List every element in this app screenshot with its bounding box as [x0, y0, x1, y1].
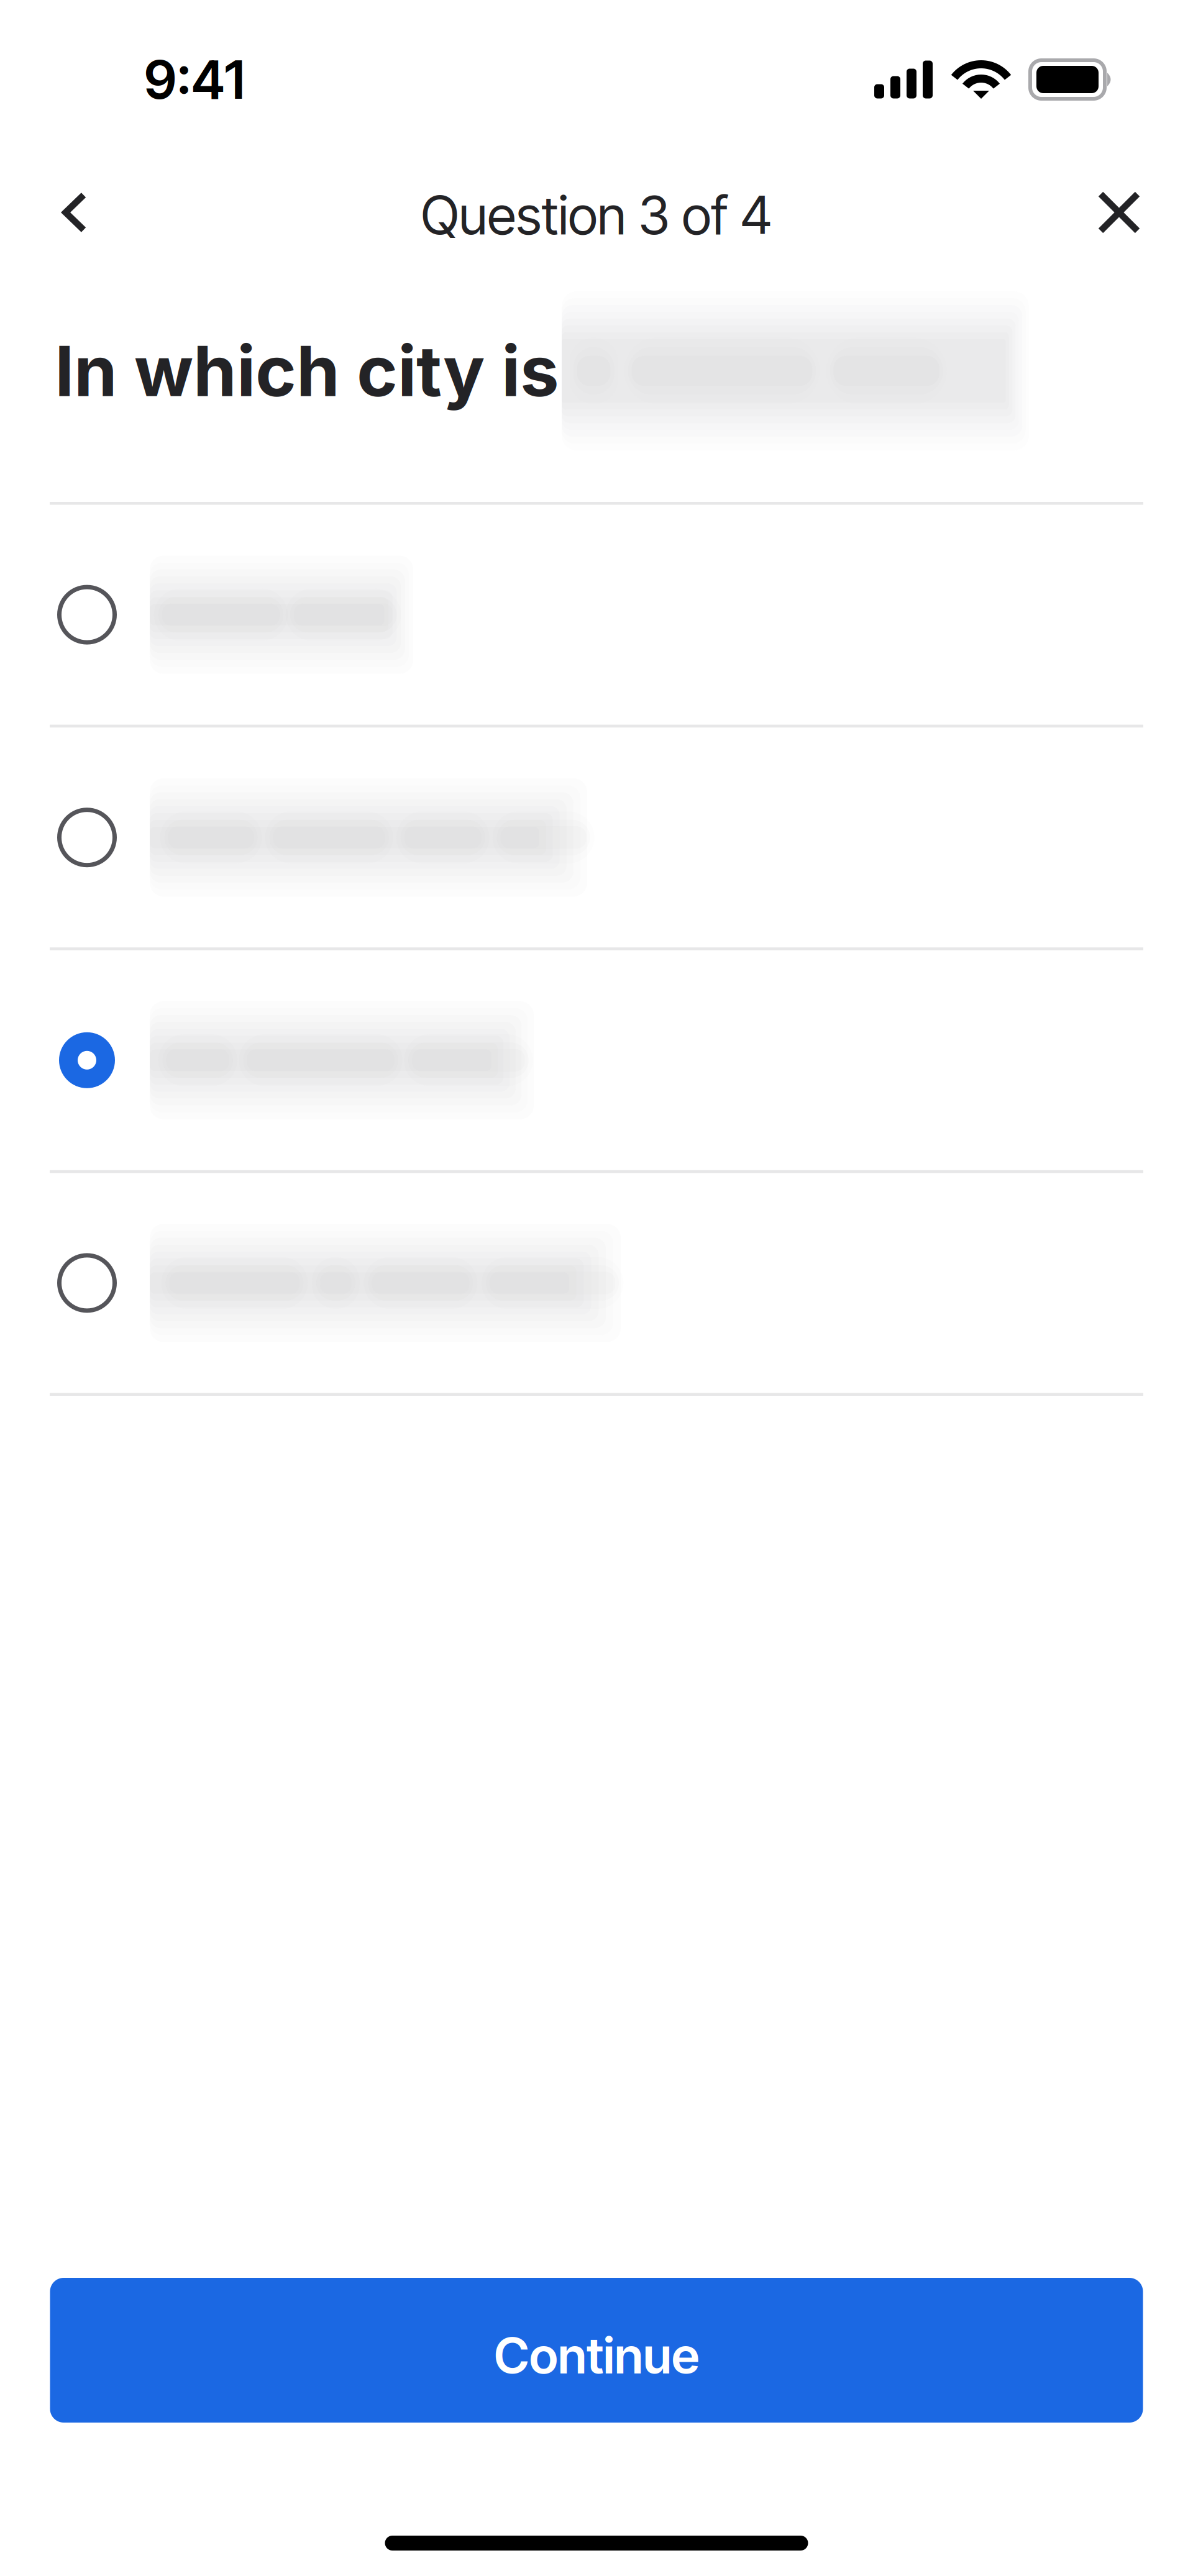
button[interactable]: Continue — [50, 2278, 1143, 2423]
staticText: Continue — [494, 2325, 699, 2385]
staticText: In which city is — [55, 329, 559, 413]
button[interactable] — [0, 728, 1193, 947]
button[interactable]: Back — [28, 166, 121, 259]
button[interactable]: Close — [1072, 166, 1166, 259]
button[interactable] — [0, 505, 1193, 725]
button[interactable] — [0, 950, 1193, 1170]
button[interactable] — [0, 1173, 1193, 1393]
staticText: Question 3 of 4 — [421, 183, 772, 247]
staticText: 9:41 — [144, 47, 245, 112]
